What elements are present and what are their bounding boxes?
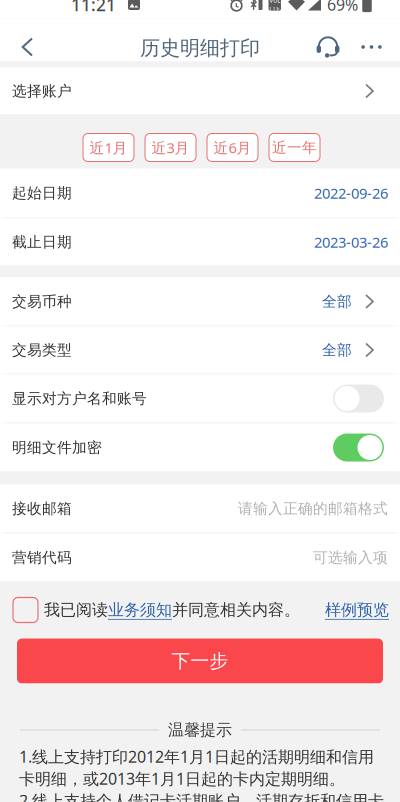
staticText: 下一步	[171, 649, 228, 672]
button[interactable]: 截止日期	[0, 218, 400, 265]
button[interactable]: 选择账户	[0, 67, 400, 114]
staticText: 截止日期	[12, 233, 72, 251]
button[interactable]: 近1月	[83, 133, 134, 161]
staticText: 近6月	[213, 138, 251, 157]
staticText: 温馨提示	[168, 720, 232, 740]
button[interactable]: 显示对方户名和账号	[0, 374, 400, 422]
staticText: 显示对方户名和账号	[12, 389, 147, 407]
staticText: 2.线上支持个人借记卡活期账户、活期存折和信用卡	[19, 790, 384, 802]
staticText: 起始日期	[12, 184, 72, 202]
staticText: 业务须知	[108, 600, 172, 620]
staticText: 营销代码	[12, 548, 72, 566]
staticText: 近1月	[89, 138, 127, 157]
staticText: 明细文件加密	[12, 438, 102, 456]
staticText: 历史明细打印	[140, 36, 260, 60]
staticText: 交易币种	[12, 292, 72, 310]
button[interactable]: 交易类型	[0, 326, 400, 373]
button[interactable]: Agree to terms	[13, 597, 38, 622]
staticText: 卡明细，或2013年1月1日起的卡内定期明细。	[19, 768, 345, 789]
staticText: 11:21	[71, 0, 116, 16]
staticText: 69%	[327, 0, 358, 15]
staticText: 近一年	[272, 138, 317, 156]
button[interactable]: 起始日期	[0, 168, 400, 217]
button[interactable]: 近3月	[145, 133, 196, 161]
button[interactable]: 交易币种	[0, 277, 400, 325]
staticText: 选择账户	[12, 82, 72, 100]
button[interactable]: More	[361, 25, 382, 68]
staticText: 全部	[322, 292, 352, 310]
staticText: 接收邮箱	[12, 499, 72, 517]
staticText: 我已阅读	[44, 600, 108, 620]
staticText: 2022-09-26	[314, 183, 388, 203]
button[interactable]: 业务须知	[108, 600, 172, 620]
button[interactable]: 接收邮箱	[0, 484, 400, 532]
staticText: 请输入正确的邮箱格式	[238, 499, 388, 517]
staticText: 1.线上支持打印2012年1月1日起的活期明细和信用	[19, 746, 374, 767]
staticText: LTE	[269, 4, 280, 13]
staticText: 可选输入项	[313, 548, 388, 566]
button[interactable]: 近一年	[269, 133, 320, 161]
button[interactable]: 营销代码	[0, 533, 400, 581]
button[interactable]: Back	[0, 25, 55, 68]
button[interactable]: 明细文件加密	[0, 423, 400, 471]
button[interactable]: 样例预览	[325, 600, 389, 620]
staticText: 近3月	[151, 138, 189, 157]
button[interactable]: 近6月	[207, 133, 258, 161]
button[interactable]: 下一步	[0, 638, 400, 683]
staticText: 交易类型	[12, 341, 72, 359]
staticText: 全部	[322, 341, 352, 359]
button[interactable]: Customer service	[312, 25, 344, 68]
staticText: 样例预览	[325, 600, 389, 620]
staticText: 并同意相关内容。	[172, 600, 300, 620]
staticText: VoL	[269, 0, 280, 4]
staticText: 2023-03-26	[314, 232, 388, 252]
